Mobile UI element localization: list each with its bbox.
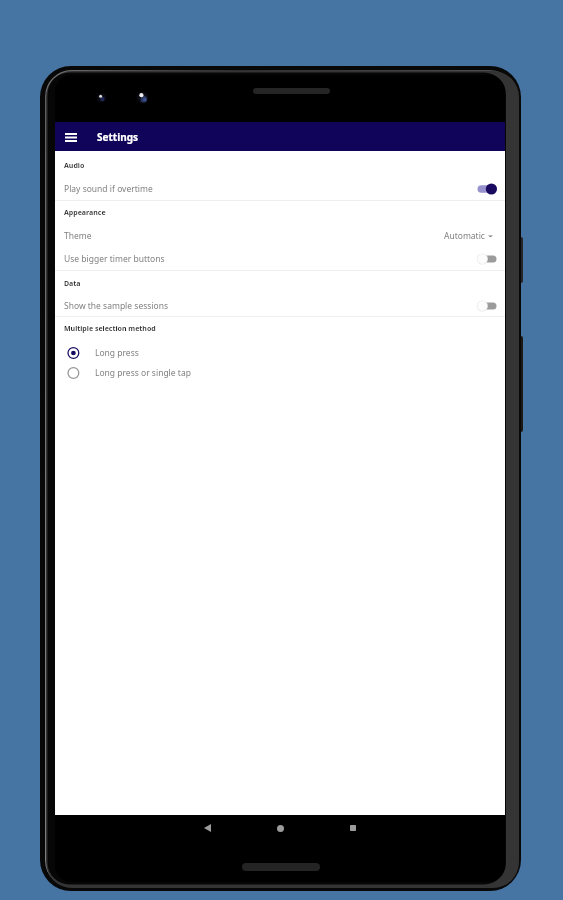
- button[interactable]: Long press or single tap: [55, 362, 505, 384]
- button[interactable]: Play sound if overtime: [55, 178, 505, 200]
- button[interactable]: Show the sample sessions: [55, 295, 505, 317]
- button[interactable]: Back: [195, 816, 219, 840]
- button[interactable]: Recent apps: [341, 816, 365, 840]
- staticText: Multiple selection method: [64, 324, 156, 334]
- staticText: Show the sample sessions: [64, 300, 168, 312]
- staticText: Theme: [64, 230, 92, 242]
- button[interactable]: Use bigger timer buttons: [55, 248, 505, 270]
- staticText: Long press: [95, 347, 139, 359]
- button[interactable]: Long press: [55, 342, 505, 364]
- button[interactable]: Open navigation menu: [55, 122, 505, 151]
- staticText: Play sound if overtime: [64, 183, 153, 195]
- staticText: Settings: [97, 130, 138, 144]
- staticText: Automatic: [444, 230, 485, 242]
- staticText: Long press or single tap: [95, 367, 191, 379]
- button[interactable]: Home: [268, 816, 292, 840]
- button[interactable]: Theme: [55, 225, 505, 247]
- staticText: Use bigger timer buttons: [64, 253, 165, 265]
- staticText: Audio: [64, 161, 85, 171]
- staticText: Appearance: [64, 208, 106, 218]
- button[interactable]: Open navigation menu: [59, 125, 83, 149]
- staticText: Data: [64, 279, 81, 289]
